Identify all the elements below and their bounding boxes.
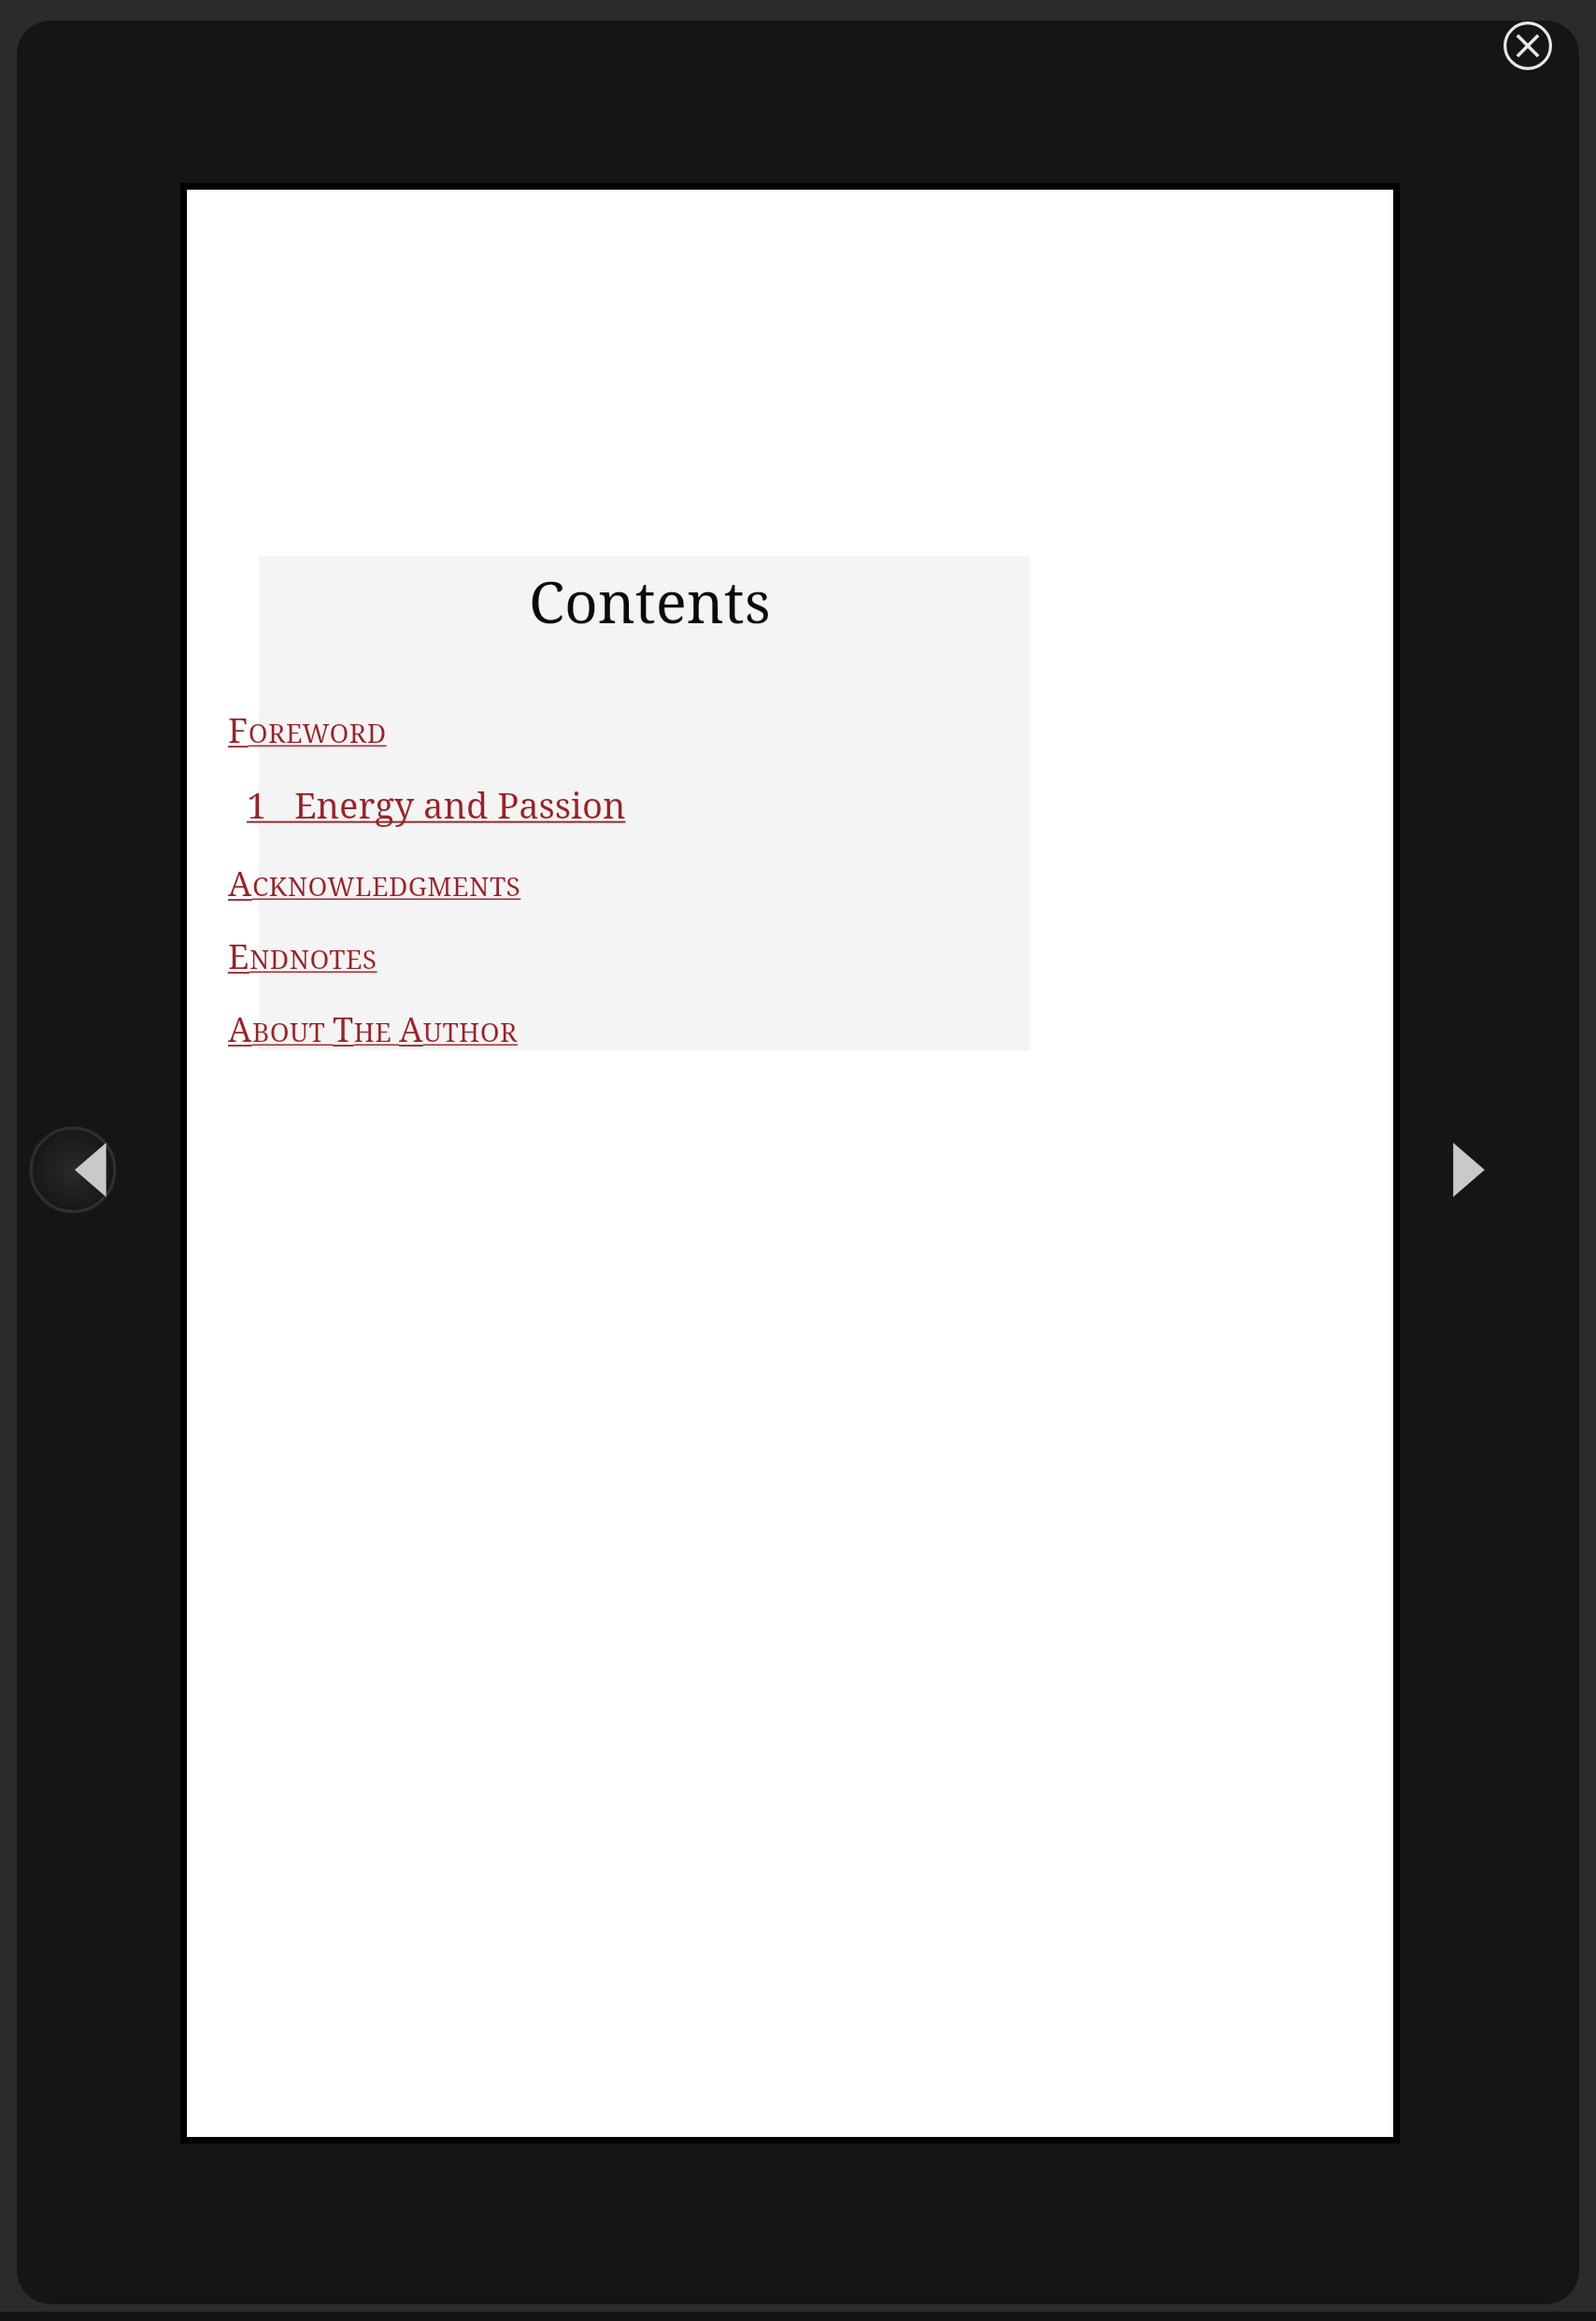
- staticText: ENDNOTES: [228, 933, 378, 979]
- button[interactable]: 1 Energy and Passion: [241, 776, 632, 833]
- button[interactable]: Previous page: [26, 1118, 131, 1222]
- staticText: Contents: [529, 562, 771, 640]
- button[interactable]: ACKNOWLEDGMENTS: [222, 857, 527, 910]
- staticText: 1 Energy and Passion: [247, 780, 626, 829]
- button[interactable]: Next page: [1422, 1118, 1527, 1222]
- button[interactable]: ABOUT THE AUTHOR: [222, 1003, 523, 1056]
- staticText: FOREWORD: [228, 707, 387, 753]
- button[interactable]: ENDNOTES: [222, 930, 383, 983]
- button[interactable]: FOREWORD: [222, 704, 392, 757]
- staticText: ABOUT THE AUTHOR: [228, 1006, 518, 1052]
- staticText: ACKNOWLEDGMENTS: [228, 861, 521, 906]
- button[interactable]: Close: [1501, 19, 1555, 73]
